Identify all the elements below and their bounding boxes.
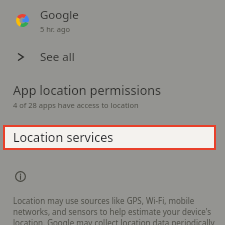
button[interactable]: See all <box>0 46 225 68</box>
staticText: 4 of 28 apps have access to location <box>13 100 139 110</box>
button[interactable]: App location permissions <box>0 81 225 113</box>
button[interactable]: Google <box>0 0 225 40</box>
staticText: 5 hr. ago <box>40 24 71 34</box>
button[interactable]: Location services <box>3 125 216 150</box>
button[interactable]: Information <box>15 171 26 182</box>
staticText: App location permissions <box>13 82 161 99</box>
staticText: Google <box>40 7 79 23</box>
staticText: See all <box>40 49 75 65</box>
staticText: Location may use sources like GPS, Wi-Fi… <box>13 195 215 225</box>
staticText: Location services <box>13 129 114 146</box>
